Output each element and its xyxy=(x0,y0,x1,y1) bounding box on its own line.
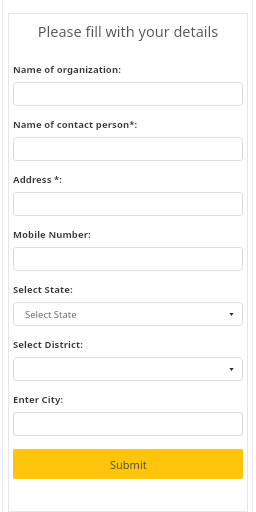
button[interactable]: Submit xyxy=(13,449,243,479)
staticText: Select State xyxy=(25,308,77,321)
button[interactable]: Name of organization: xyxy=(13,82,243,106)
button[interactable]: Mobile Number: xyxy=(13,247,243,271)
staticText: Select District: xyxy=(13,338,83,351)
button[interactable]: Enter City: xyxy=(13,412,243,436)
staticText: Enter City: xyxy=(13,393,64,406)
staticText: Mobile Number: xyxy=(13,228,91,241)
button[interactable]: Select State: xyxy=(13,302,243,326)
button[interactable]: Select District: xyxy=(13,357,243,381)
staticText: Address *: xyxy=(13,173,63,186)
staticText: Name of contact person*: xyxy=(13,118,138,131)
staticText: Please fill with your details xyxy=(13,21,243,41)
staticText: Name of organization: xyxy=(13,63,121,76)
staticText: Submit xyxy=(110,457,147,472)
button[interactable]: Address *: xyxy=(13,192,243,216)
button[interactable]: Name of contact person*: xyxy=(13,137,243,161)
staticText: Select State: xyxy=(13,283,73,296)
